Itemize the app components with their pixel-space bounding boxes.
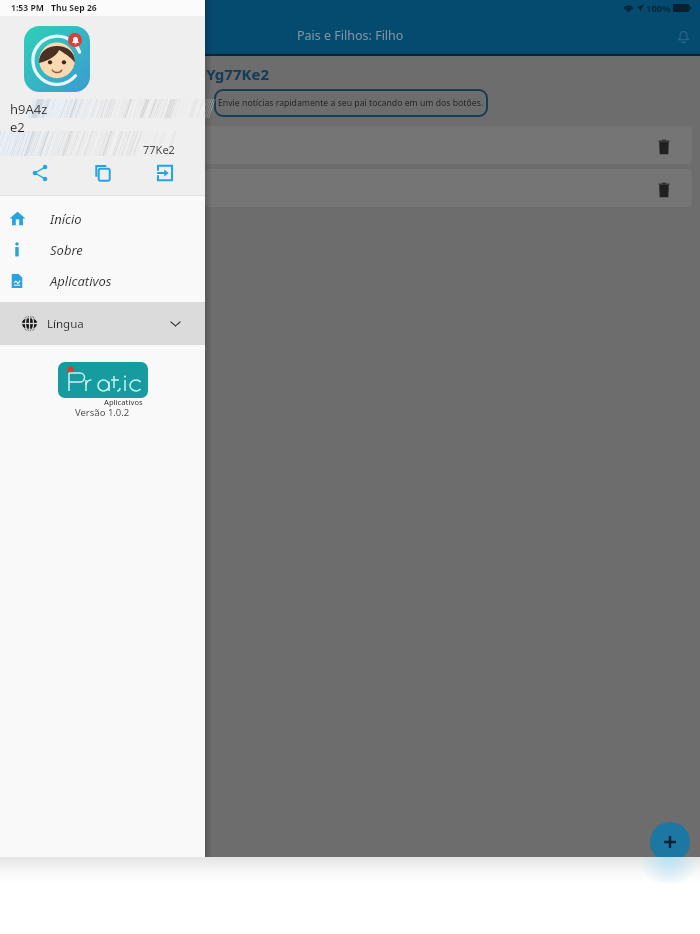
staticText: Thu Sep 26 (51, 2, 97, 14)
staticText: Início (50, 210, 82, 228)
button[interactable]: Login (149, 157, 180, 188)
staticText: Aplicativos (50, 272, 112, 290)
staticText: 100% (646, 2, 671, 15)
staticText: Versão 1.0.2 (75, 406, 130, 419)
staticText: 77Ke2 (143, 142, 175, 157)
button[interactable]: Início (0, 203, 205, 234)
button[interactable]: Notifications (668, 21, 698, 51)
staticText: 1:53 PM (11, 2, 44, 14)
button[interactable]: Língua (0, 302, 205, 345)
button[interactable]: Delete (651, 177, 677, 203)
staticText: Pais e Filhos: Filho (297, 27, 404, 44)
staticText: Filho Yg77Ke2 (166, 64, 269, 84)
button[interactable]: Close navigation drawer (0, 54, 700, 857)
button[interactable]: Aplicativos (0, 265, 205, 296)
button[interactable]: Add (650, 822, 690, 857)
button[interactable]: Delete (651, 134, 677, 160)
staticText: h9A4z e2 (10, 100, 48, 136)
button[interactable]: Delete (8, 169, 692, 207)
staticText: Língua (47, 316, 84, 332)
staticText: Aplicativos (104, 397, 143, 407)
button[interactable]: Delete (8, 126, 692, 164)
staticText: Sobre (50, 241, 83, 259)
button[interactable]: Sobre (0, 234, 205, 265)
button[interactable]: Copy (87, 157, 118, 188)
button[interactable]: Share (24, 157, 55, 188)
staticText: Envie notícias rapidamente a seu pai toc… (218, 97, 484, 109)
